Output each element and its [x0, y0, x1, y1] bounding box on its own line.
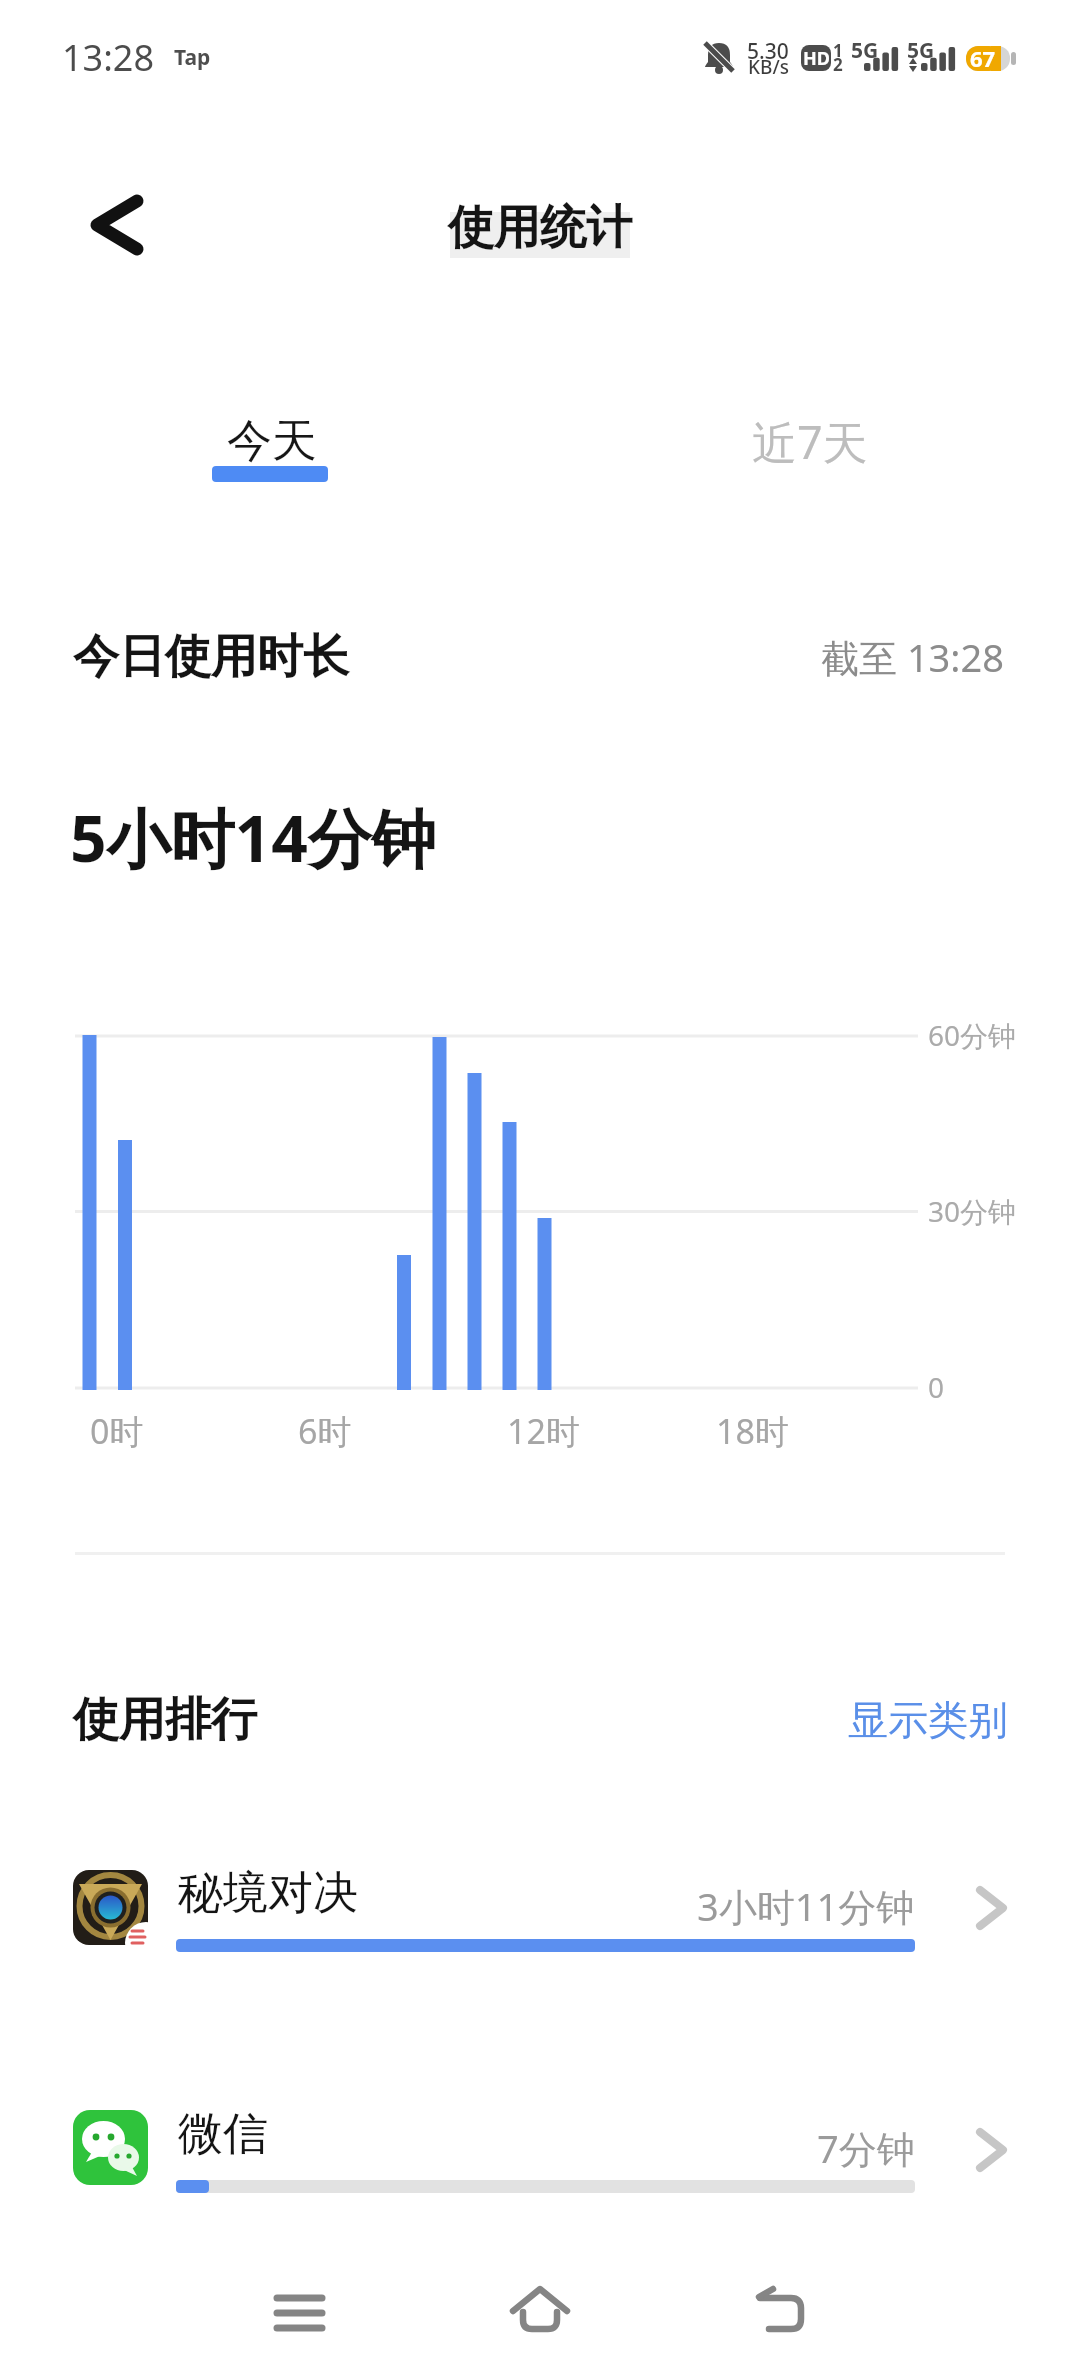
- staticText: 6时: [298, 1408, 352, 1454]
- staticText: 今天: [227, 413, 317, 470]
- staticText: 微信: [178, 2106, 268, 2163]
- staticText: 使用统计: [448, 199, 632, 257]
- staticText: 5.30: [747, 37, 789, 66]
- button[interactable]: [70, 190, 150, 260]
- staticText: 5G: [907, 36, 935, 65]
- button[interactable]: [195, 405, 345, 495]
- staticText: 5G: [851, 36, 879, 65]
- staticText: 近7天: [752, 411, 868, 472]
- staticText: 2: [833, 53, 843, 76]
- button[interactable]: [250, 2265, 350, 2360]
- staticText: 67: [970, 43, 996, 73]
- staticText: 18时: [716, 1408, 789, 1454]
- staticText: 7分钟: [817, 2122, 915, 2174]
- staticText: HD: [803, 46, 830, 71]
- staticText: 1: [833, 39, 843, 62]
- staticText: 30分钟: [928, 1192, 1017, 1230]
- staticText: 5小时14分钟: [70, 794, 436, 881]
- staticText: 0时: [90, 1408, 144, 1454]
- button[interactable]: [60, 1856, 1020, 1966]
- button[interactable]: [730, 2265, 830, 2360]
- button[interactable]: [60, 2098, 1020, 2208]
- button[interactable]: 显示类别: [840, 1685, 1015, 1755]
- staticText: 今日使用时长: [73, 628, 349, 686]
- staticText: 显示类别: [848, 1695, 1008, 1745]
- button[interactable]: [490, 2265, 590, 2360]
- staticText: KB/s: [748, 54, 789, 80]
- button[interactable]: [735, 405, 885, 495]
- staticText: 60分钟: [928, 1016, 1017, 1054]
- staticText: 0: [928, 1368, 945, 1406]
- staticText: 3小时11分钟: [697, 1880, 915, 1932]
- staticText: 13:28: [62, 33, 155, 82]
- staticText: 秘境对决: [178, 1865, 358, 1922]
- staticText: 12时: [507, 1408, 580, 1454]
- staticText: 截至 13:28: [821, 631, 1005, 683]
- staticText: Tap: [174, 43, 211, 72]
- staticText: 使用排行: [73, 1691, 257, 1749]
